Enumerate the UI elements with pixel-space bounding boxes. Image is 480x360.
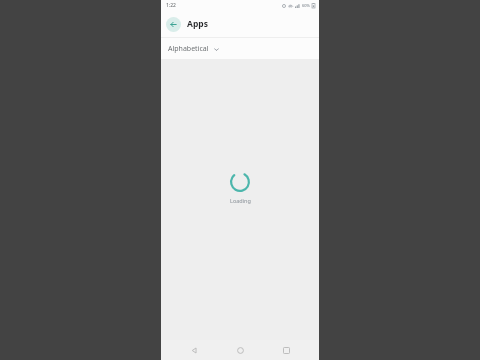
staticText: Apps (187, 18, 208, 30)
button[interactable]: Home (227, 340, 253, 360)
button[interactable]: Recent apps (273, 340, 299, 360)
button[interactable]: Back (181, 340, 207, 360)
button[interactable]: Alphabetical (166, 42, 221, 56)
staticText: 1:22 (166, 2, 176, 9)
button[interactable]: Back (166, 17, 181, 32)
staticText: Loading (230, 197, 251, 204)
staticText: Alphabetical (168, 44, 209, 54)
staticText: 60% (302, 3, 310, 8)
